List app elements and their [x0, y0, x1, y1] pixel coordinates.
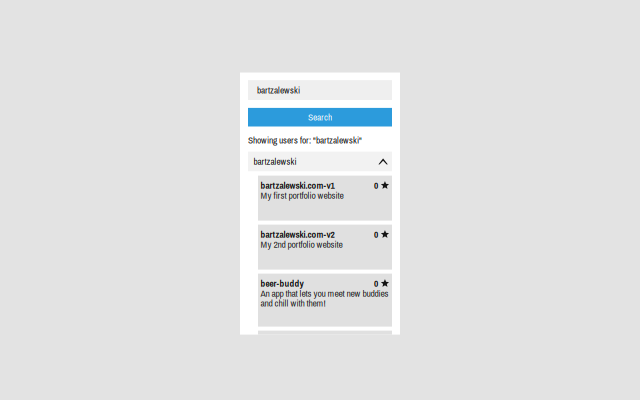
- staticText: bartzalewski: [257, 84, 300, 96]
- button[interactable]: bartzalewski.com-v2: [258, 225, 392, 270]
- button[interactable]: Search: [248, 108, 392, 126]
- staticText: bartzalewski.com-v2: [261, 228, 335, 241]
- staticText: and chill with them!: [261, 296, 326, 309]
- staticText: An app that lets you meet new buddies: [261, 287, 389, 300]
- button[interactable]: bartzalewski, collapse repositories: [248, 152, 392, 171]
- button[interactable]: bartzalewski.com-v1: [258, 176, 392, 221]
- staticText: 0: [374, 179, 378, 192]
- staticText: My first portfolio website: [261, 189, 344, 202]
- staticText: 0: [374, 277, 378, 290]
- staticText: beer-buddy: [261, 277, 304, 290]
- staticText: Search: [308, 111, 332, 123]
- button[interactable]: Search field, bartzalewski: [248, 80, 392, 100]
- staticText: bartzalewski: [253, 155, 296, 168]
- staticText: 0: [374, 228, 378, 241]
- staticText: My 2nd portfolio website: [261, 238, 343, 251]
- staticText: Showing users for: "bartzalewski": [248, 134, 362, 146]
- staticText: bartzalewski.com-v1: [261, 179, 335, 192]
- button[interactable]: beer-buddy: [258, 274, 392, 327]
